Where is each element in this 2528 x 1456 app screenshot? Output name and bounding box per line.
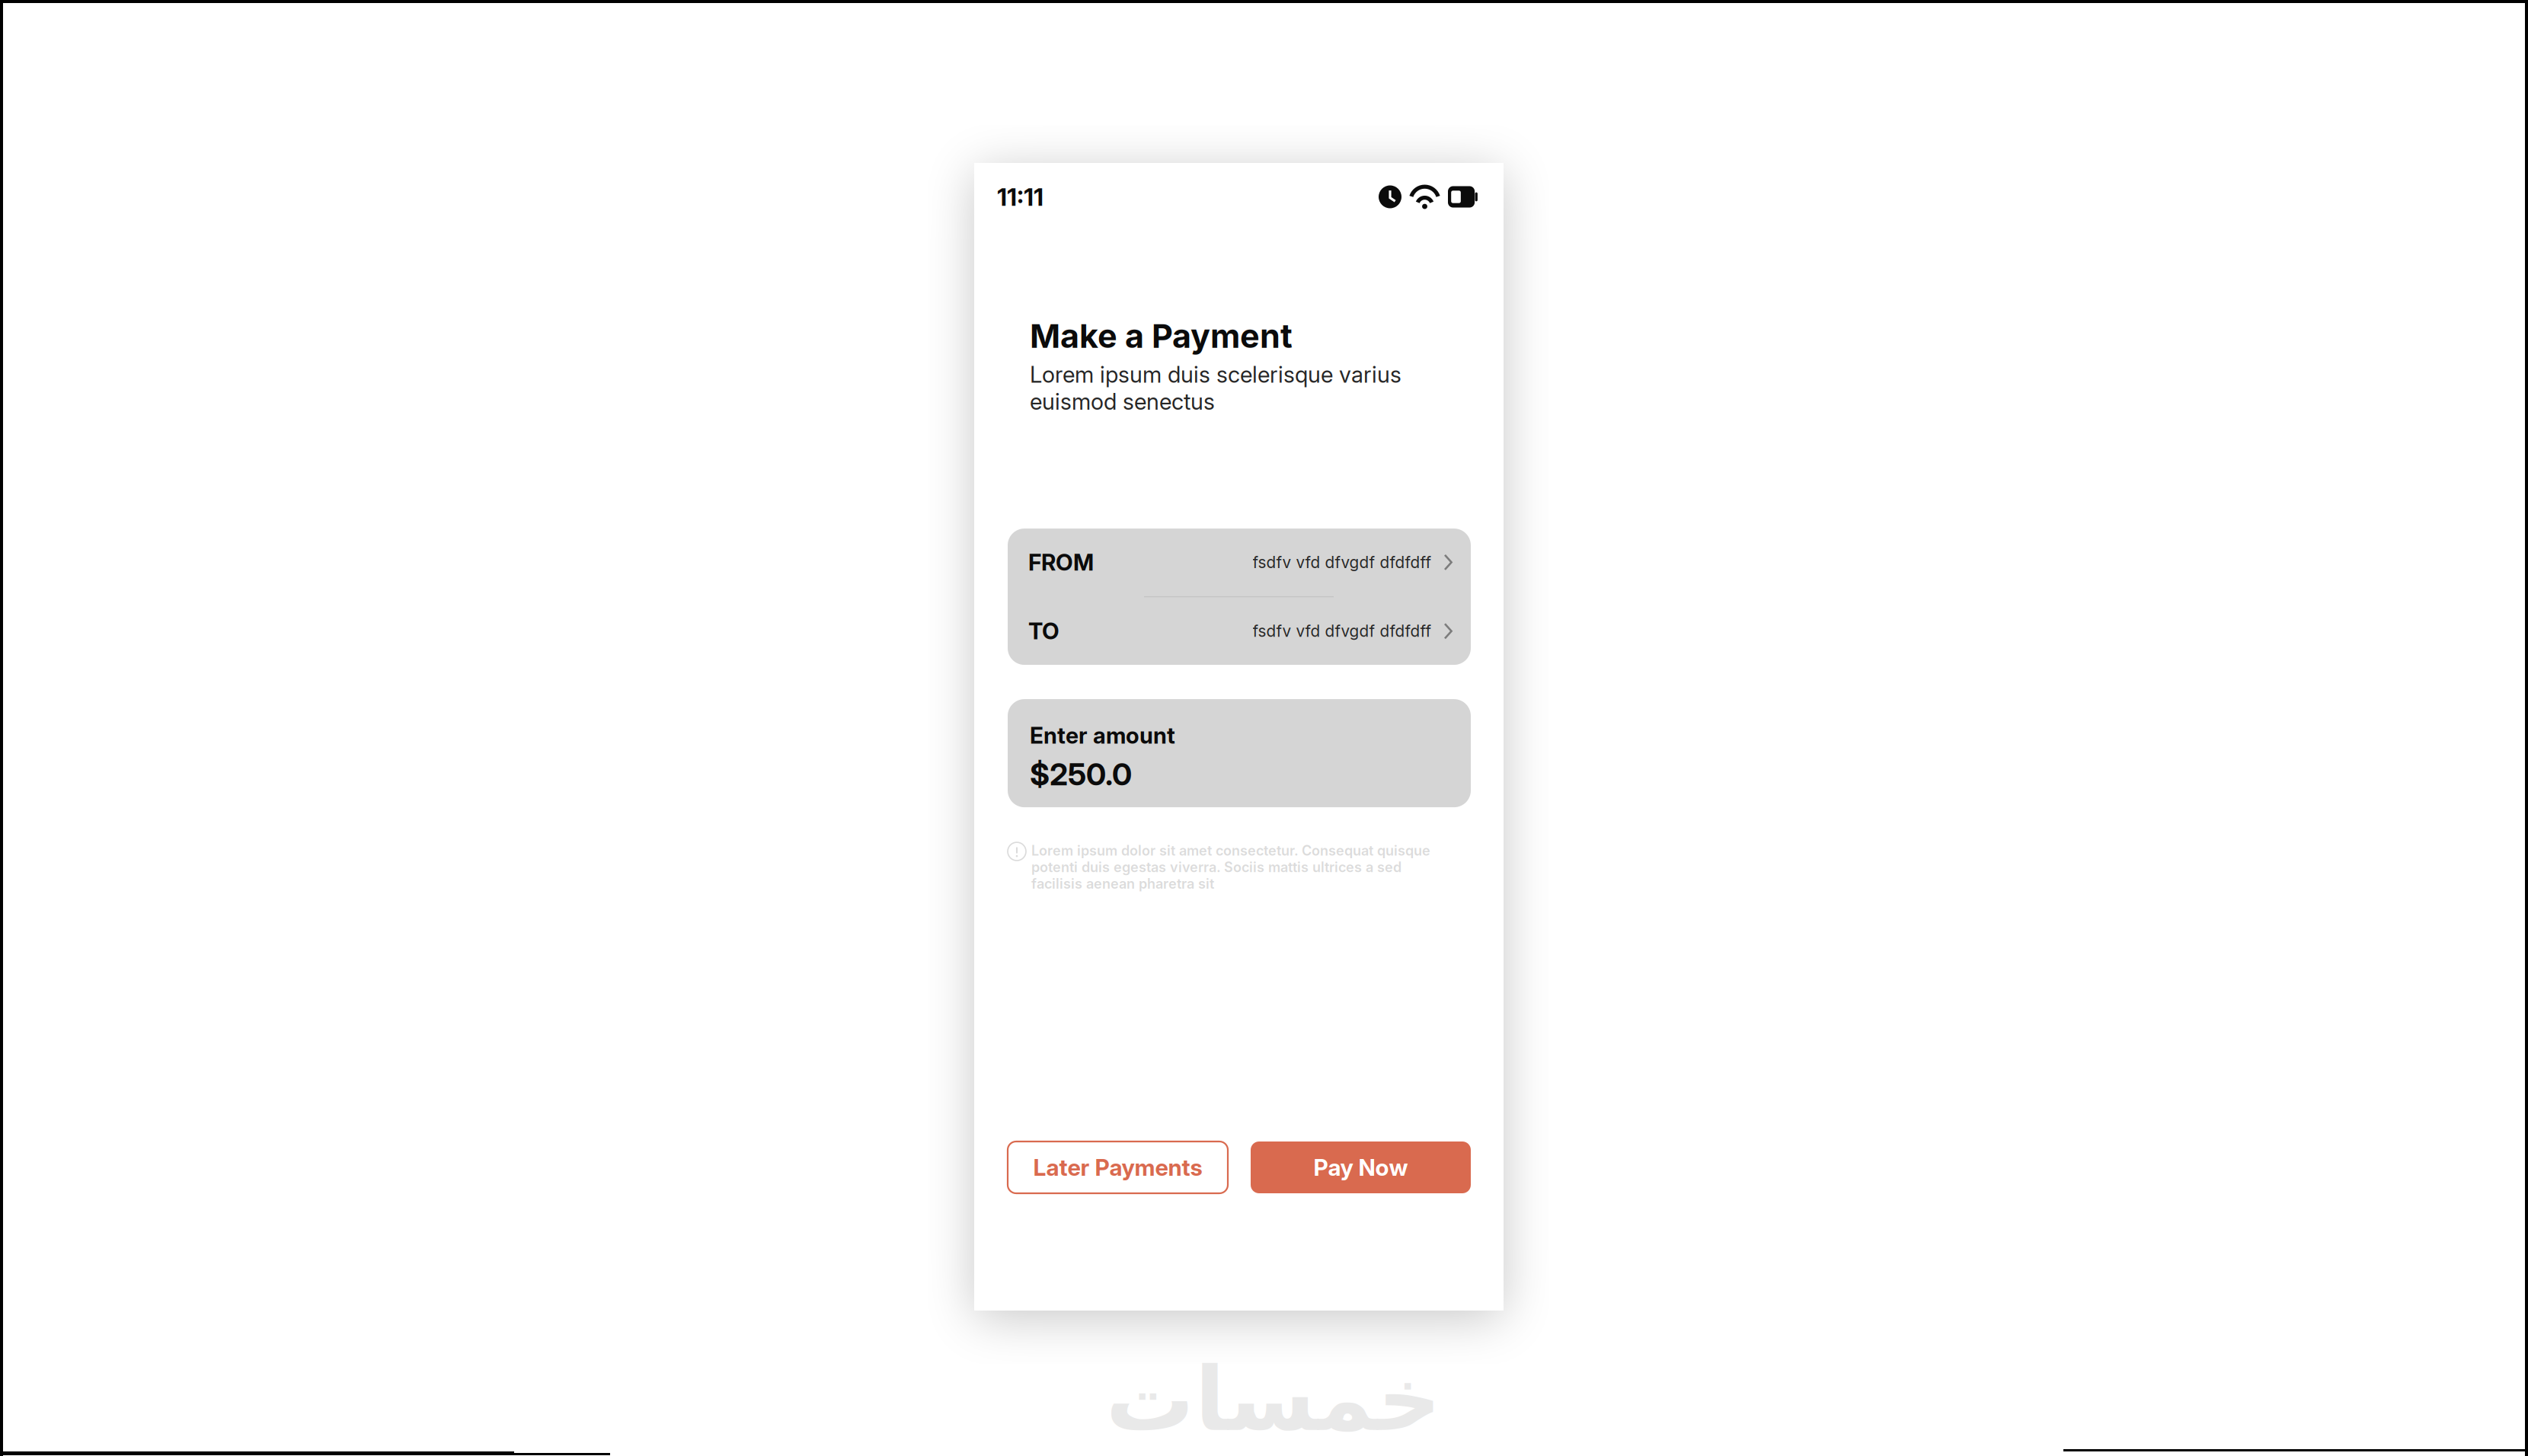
staticText: 11:11	[997, 182, 1043, 212]
staticText: Enter amount	[1030, 722, 1175, 749]
staticText: TO	[1028, 617, 1059, 645]
staticText: fsdfv vfd dfvgdf dfdfdff	[1253, 622, 1432, 641]
button[interactable]: Enter amount	[1008, 699, 1471, 807]
staticText: FROM	[1028, 549, 1094, 576]
staticText: $250.0	[1030, 756, 1132, 793]
staticText: خمسات	[1105, 1348, 1441, 1451]
staticText: Lorem ipsum duis scelerisque varius euis…	[1030, 361, 1401, 415]
button[interactable]: TO account: fsdfv vfd dfvgdf dfdfdff	[1008, 597, 1471, 665]
staticText: Lorem ipsum dolor sit amet consectetur. …	[1031, 842, 1430, 892]
staticText: Pay Now	[1314, 1154, 1408, 1181]
staticText: fsdfv vfd dfvgdf dfdfdff	[1253, 553, 1432, 572]
staticText: Later Payments	[1033, 1154, 1202, 1181]
button[interactable]: FROM account: fsdfv vfd dfvgdf dfdfdff	[1008, 528, 1471, 596]
staticText: Make a Payment	[1030, 316, 1293, 356]
button[interactable]: Pay Now	[1251, 1141, 1471, 1193]
button[interactable]: Later Payments	[1008, 1141, 1228, 1193]
